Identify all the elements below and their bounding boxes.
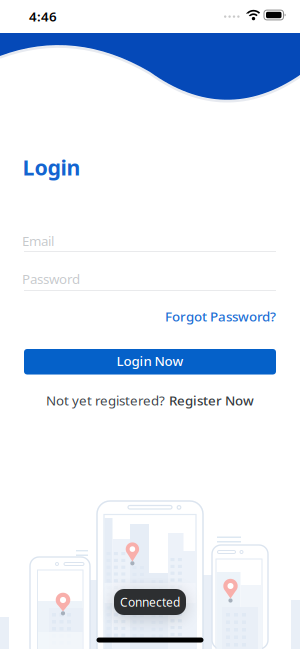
staticText: Register Now	[169, 391, 254, 409]
staticText: Login Now	[116, 352, 183, 370]
staticText: Not yet registered?	[46, 391, 165, 409]
button[interactable]: Password	[24, 270, 276, 291]
staticText: Email	[22, 232, 54, 250]
staticText: Forgot Password?	[165, 307, 276, 325]
staticText: Connected	[120, 594, 180, 610]
staticText: Login	[22, 153, 80, 181]
staticText: 4:46	[29, 7, 57, 25]
button[interactable]: Email	[24, 232, 276, 252]
staticText: Password	[22, 270, 80, 288]
button[interactable]: Forgot Password?	[165, 307, 276, 325]
button[interactable]: Login Now	[24, 349, 276, 374]
button[interactable]: Not yet registered?	[46, 391, 254, 409]
